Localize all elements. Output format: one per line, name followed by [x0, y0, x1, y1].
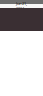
- staticText: Jun 21, 2024: [16, 1, 27, 11]
